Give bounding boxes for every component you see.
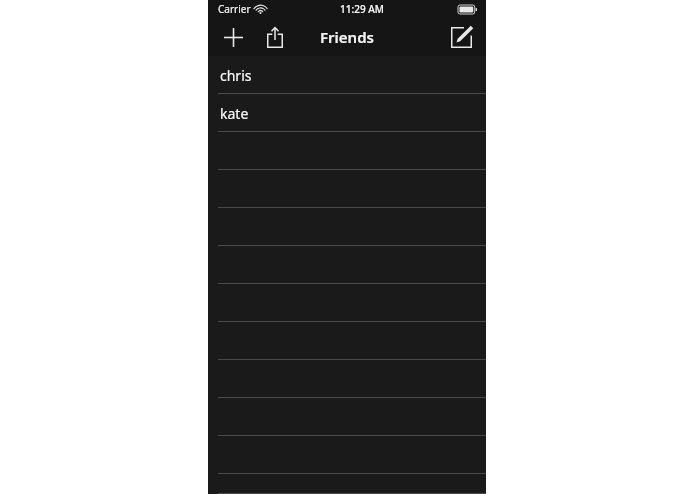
staticText: kate [220, 104, 249, 123]
button[interactable] [208, 398, 486, 436]
button[interactable]: Add [217, 21, 249, 53]
button[interactable] [208, 474, 486, 494]
button[interactable] [208, 170, 486, 208]
button[interactable] [208, 360, 486, 398]
staticText: 11:29 AM [340, 2, 384, 16]
button[interactable] [208, 132, 486, 170]
button[interactable] [208, 284, 486, 322]
staticText: chris [220, 66, 252, 85]
button[interactable]: chris [208, 56, 486, 94]
button[interactable] [208, 436, 486, 474]
button[interactable] [208, 208, 486, 246]
button[interactable]: kate [208, 94, 486, 132]
button[interactable]: Share [259, 21, 291, 53]
staticText: Carrier [218, 2, 251, 16]
staticText: Friends [320, 27, 374, 47]
button[interactable] [208, 322, 486, 360]
button[interactable]: Compose [445, 21, 477, 53]
button[interactable] [208, 246, 486, 284]
